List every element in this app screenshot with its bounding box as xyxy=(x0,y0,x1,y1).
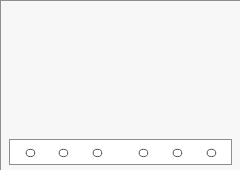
button[interactable]: Notifications xyxy=(127,139,160,165)
button[interactable]: Search xyxy=(47,139,80,165)
button[interactable]: Home xyxy=(14,139,47,165)
button[interactable]: Library xyxy=(81,139,114,165)
button[interactable]: Profile xyxy=(195,139,228,165)
button[interactable]: Messages xyxy=(161,139,194,165)
